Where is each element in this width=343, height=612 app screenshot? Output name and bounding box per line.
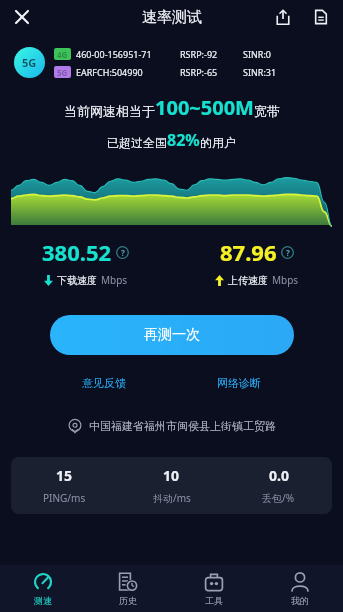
staticText: 5G	[22, 55, 37, 70]
staticText: SINR:0	[243, 48, 271, 60]
staticText: 87.96	[220, 237, 277, 267]
button[interactable]: Report	[308, 4, 334, 30]
staticText: PING/ms	[43, 491, 86, 505]
staticText: 工具	[205, 595, 223, 606]
staticText: ?	[286, 247, 290, 258]
staticText: 82%	[167, 129, 200, 151]
staticText: 意见反馈	[82, 376, 126, 390]
staticText: Mbps	[101, 273, 128, 287]
staticText: Mbps	[272, 273, 299, 287]
staticText: 0.0	[269, 466, 289, 485]
staticText: 已超过全国	[107, 135, 167, 150]
button[interactable]: 15	[11, 457, 332, 514]
staticText: 网络诊断	[217, 376, 261, 390]
staticText: EARFCH:504990	[76, 66, 143, 78]
staticText: 460-00-156951-71	[76, 48, 152, 60]
staticText: 宽带	[254, 103, 280, 119]
staticText: 15	[56, 466, 73, 485]
staticText: 当前网速相当于	[64, 103, 155, 119]
button[interactable]: 网络诊断	[213, 373, 265, 393]
staticText: 历史	[119, 595, 137, 606]
button[interactable]: Help	[281, 246, 294, 259]
staticText: 抖动/ms	[153, 491, 191, 505]
button[interactable]: Share	[270, 4, 296, 30]
staticText: 380.52	[42, 237, 112, 267]
button[interactable]: Profile	[257, 565, 343, 612]
staticText: 100~500M	[155, 94, 254, 121]
staticText: 的用户	[200, 135, 236, 150]
staticText: RSRP:-65	[180, 66, 218, 78]
staticText: 下载速度	[57, 274, 97, 287]
staticText: 再测一次	[144, 326, 200, 344]
button[interactable]: Close	[7, 2, 37, 32]
button[interactable]: Speed test	[0, 565, 85, 612]
staticText: 上传速度	[228, 274, 268, 287]
button[interactable]: Help	[116, 246, 129, 259]
button[interactable]: Tools	[171, 565, 257, 612]
staticText: SINR:31	[243, 66, 277, 78]
staticText: ?	[121, 247, 125, 258]
staticText: 4G	[57, 49, 68, 60]
staticText: 5G	[57, 67, 68, 78]
button[interactable]: 意见反馈	[78, 373, 130, 393]
staticText: RSRP:-92	[180, 48, 218, 60]
staticText: 中国福建省福州市闽侯县上街镇工贸路	[89, 419, 276, 433]
staticText: 我的	[291, 595, 309, 606]
staticText: 测速	[34, 595, 52, 606]
staticText: 速率测试	[142, 8, 202, 27]
staticText: 丢包/%	[262, 491, 295, 505]
button[interactable]: History	[85, 565, 171, 612]
staticText: 10	[163, 466, 180, 485]
button[interactable]: 再测一次	[50, 315, 294, 355]
